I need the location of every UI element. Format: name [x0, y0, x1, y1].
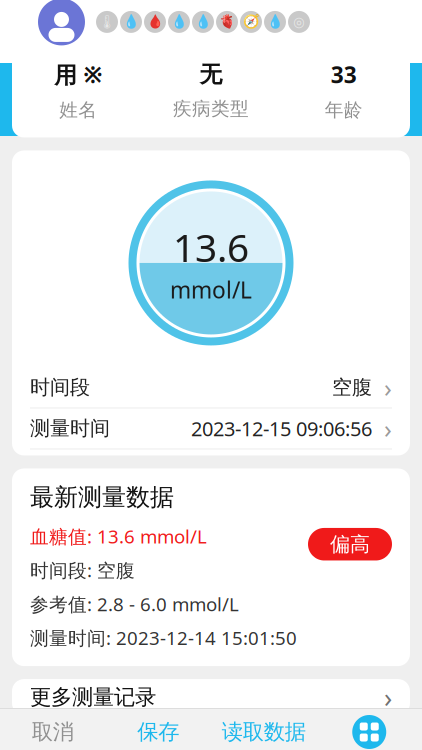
staticText: 🧭 [242, 14, 259, 29]
staticText: 🫀 [218, 14, 235, 29]
staticText: 时间段: 空腹 [30, 558, 135, 582]
staticText: mmol/L [170, 275, 252, 305]
staticText: 无 [199, 61, 222, 88]
staticText: 2023-12-15 09:06:56 [191, 415, 372, 442]
staticText: 13.6 [173, 221, 249, 272]
staticText: 💧 [266, 14, 283, 29]
staticText: 💧 [122, 14, 139, 29]
staticText: › [384, 412, 392, 445]
staticText: › [384, 679, 392, 715]
staticText: 最新测量数据 [30, 482, 174, 512]
staticText: 用 ※ [54, 59, 102, 89]
button[interactable]: 保存 [105, 709, 211, 750]
staticText: 血糖检测 [161, 25, 261, 56]
button[interactable]: 测量时间 [12, 408, 410, 448]
button[interactable]: 读取数据 [211, 709, 316, 750]
staticText: 测量时间 [30, 416, 110, 441]
staticText: 保存 [137, 719, 179, 745]
staticText: 读取数据 [222, 719, 306, 745]
button[interactable]: More options [316, 709, 422, 750]
staticText: 更多测量记录 [30, 684, 156, 710]
staticText: 🩸 [146, 14, 163, 29]
staticText: 血糖值: 13.6 mmol/L [30, 524, 207, 549]
staticText: 年龄 [325, 98, 363, 121]
staticText: 💧 [170, 14, 187, 29]
staticText: 时间段 [30, 375, 90, 400]
staticText: 偏高 [330, 532, 370, 556]
staticText: › [384, 371, 392, 404]
staticText: 🌡 [98, 14, 115, 29]
staticText: 空腹 [332, 375, 372, 400]
button[interactable]: 取消 [0, 709, 105, 750]
staticText: 姓名 [59, 98, 97, 121]
staticText: 09:07 [28, 0, 86, 12]
staticText: 33 [331, 59, 357, 89]
button[interactable]: 更多测量记录 [12, 679, 410, 715]
button[interactable]: 时间段 [12, 367, 410, 407]
staticText: 测量时间: 2023-12-14 15:01:50 [30, 625, 297, 650]
staticText: 取消 [32, 719, 74, 745]
staticText: 疾病类型 [173, 97, 249, 120]
staticText: 💧 [194, 14, 211, 29]
staticText: ◎ [293, 14, 305, 29]
button[interactable]: Back [0, 19, 44, 63]
staticText: 参考值: 2.8 - 6.0 mmol/L [30, 591, 239, 616]
